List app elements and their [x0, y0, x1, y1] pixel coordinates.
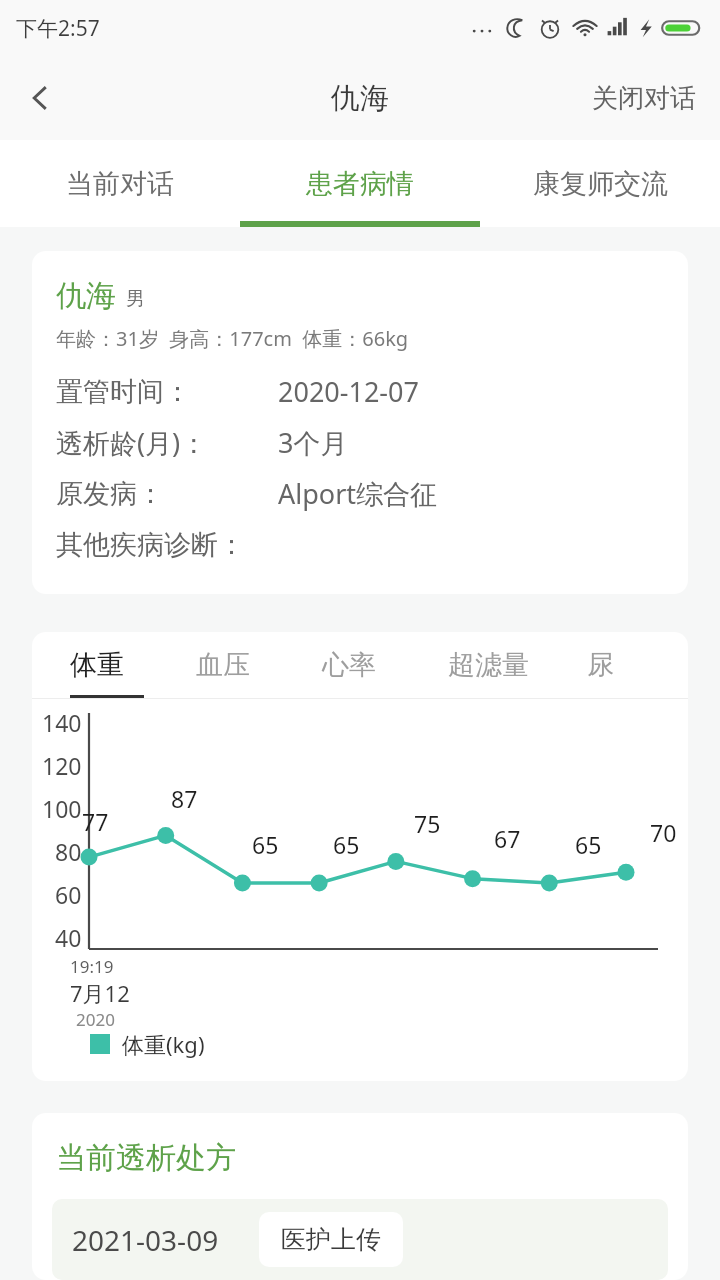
staticText: 体重(kg)	[122, 1029, 205, 1059]
staticText: 患者病情	[306, 167, 414, 201]
button[interactable]: 超滤量	[448, 648, 529, 682]
button[interactable]: 尿	[587, 648, 614, 682]
staticText: 3个月	[278, 424, 348, 461]
staticText: 仇海	[56, 277, 116, 315]
staticText: 医护上传	[281, 1224, 381, 1255]
staticText: 原发病：	[56, 477, 164, 511]
staticText: 67	[494, 823, 521, 854]
staticText: 年龄：31岁 身高：177cm 体重：66kg	[56, 325, 409, 352]
staticText: 心率	[322, 648, 376, 682]
staticText: 75	[414, 808, 441, 839]
staticText: 140	[42, 707, 82, 738]
staticText: 80	[55, 836, 82, 867]
staticText: 血压	[196, 648, 250, 682]
staticText: 19:19	[70, 955, 114, 978]
staticText: 120	[42, 750, 82, 781]
staticText: 100	[42, 793, 82, 824]
staticText: 7月12	[70, 978, 130, 1008]
staticText: 康复师交流	[533, 167, 668, 201]
staticText: 仇海	[331, 80, 389, 117]
staticText: 男	[126, 287, 145, 311]
staticText: 关闭对话	[592, 82, 696, 115]
staticText: 当前透析处方	[56, 1139, 236, 1177]
staticText: 透析龄(月)：	[56, 424, 208, 461]
staticText: 尿	[587, 648, 614, 682]
button[interactable]: 患者病情	[240, 140, 480, 227]
staticText: 65	[252, 829, 279, 860]
button[interactable]: 体重	[70, 648, 124, 682]
staticText: 其他疾病诊断：	[56, 528, 245, 562]
staticText: 60	[55, 879, 82, 910]
staticText: 65	[333, 829, 360, 860]
staticText: 下午2:57	[16, 14, 100, 43]
staticText: 当前对话	[66, 167, 174, 201]
staticText: 40	[55, 922, 82, 953]
button[interactable]: 当前对话	[0, 140, 240, 227]
staticText: 超滤量	[448, 648, 529, 682]
button[interactable]: 心率	[322, 648, 376, 682]
button[interactable]: 2021-03-09	[52, 1199, 668, 1280]
button[interactable]: 康复师交流	[480, 140, 720, 227]
staticText: 2020	[76, 1008, 115, 1029]
button[interactable]: 关闭对话	[568, 66, 720, 131]
staticText: 77	[82, 806, 109, 837]
staticText: 置管时间：	[56, 375, 191, 409]
staticText: 65	[575, 829, 602, 860]
staticText: 2021-03-09	[72, 1221, 219, 1259]
button[interactable]: 血压	[196, 648, 250, 682]
staticText: 70	[650, 817, 677, 848]
button[interactable]: Back	[12, 69, 70, 127]
staticText: Alport综合征	[278, 475, 438, 512]
staticText: 87	[171, 783, 198, 814]
staticText: 体重	[70, 648, 124, 682]
staticText: 2020-12-07	[278, 373, 419, 410]
